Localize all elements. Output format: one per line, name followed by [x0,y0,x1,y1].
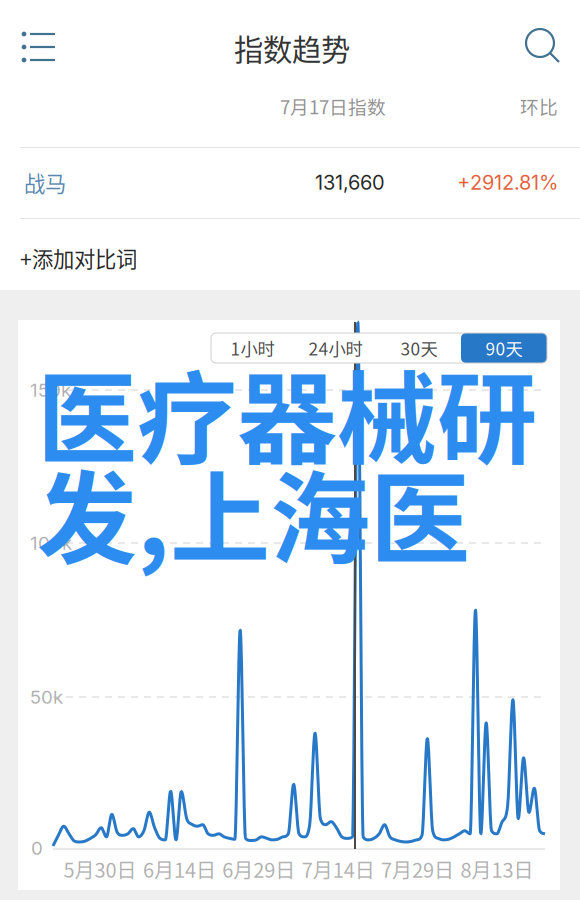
button[interactable]: +添加对比词 [20,228,240,288]
staticText: 1小时 [230,335,274,361]
staticText: 24小时 [308,335,362,361]
button[interactable]: 菜单 [11,21,63,73]
staticText: 7月17日指数 [280,92,386,119]
button[interactable]: 1小时 [211,333,294,363]
staticText: 150k [30,379,71,401]
staticText: 医疗器械研 [37,340,537,484]
staticText: 指数趋势 [234,27,350,69]
staticText: 环比 [520,92,558,119]
staticText: 50k [30,686,63,708]
button[interactable]: 90天 [461,333,547,363]
staticText: 6月14日 [143,854,216,883]
staticText: 战马 [24,167,66,198]
button[interactable]: 24小时 [294,333,377,363]
staticText: 90天 [485,335,522,361]
staticText: 8月13日 [460,854,533,883]
staticText: 6月29日 [222,854,295,883]
staticText: 131,660 [315,170,385,195]
staticText: 100k [30,532,72,554]
button[interactable]: 战马 [24,147,144,218]
button[interactable]: 30天 [377,333,461,363]
button[interactable]: 搜索 [514,17,566,69]
staticText: 0 [31,837,43,859]
staticText: 30天 [400,335,437,361]
staticText: 7月29日 [381,854,454,883]
staticText: 5月30日 [63,854,136,883]
staticText: +2912.81% [457,170,558,195]
staticText: 发,上海医 [37,440,470,584]
staticText: +添加对比词 [20,243,137,273]
staticText: 7月14日 [302,854,375,883]
